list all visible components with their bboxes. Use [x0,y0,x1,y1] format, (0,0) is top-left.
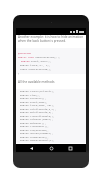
button[interactable]: Back [28,145,35,152]
staticText: Bugsee.setEmail(email); [20,117,53,120]
staticText: Bugsee.event(name); [20,100,48,103]
button[interactable]: Recent apps [67,145,74,152]
staticText: Bugsee.event("back"); [21,59,52,62]
staticText: Bugsee.upload(summary); [20,131,53,134]
staticText: } [18,71,20,74]
staticText: Bugsee.showDialog(); [20,135,49,138]
staticText: Bugsee.getAttribute(k); [20,110,53,113]
staticText: public void onBackPressed() { [18,55,60,58]
staticText: Bugsee.clearEmail(); [20,124,49,127]
staticText: Bugsee.addSecureRect(r); [20,138,55,141]
staticText: Bugsee.setAttribute(k,v); [20,107,56,110]
staticText: Bugsee.clearAttribute(); [20,114,55,117]
staticText: super.onBackPressed(); [20,67,52,70]
staticText: Bugsee.log(message); [20,128,49,131]
button[interactable]: Home [48,145,55,152]
staticText: Bugsee.relaunch(); [20,96,46,99]
staticText: Bugsee.launch(activity); [20,89,55,92]
staticText: Bugsee.getEmail(); [20,121,46,124]
staticText: Another example: it is how to hide anima… [18,35,84,39]
staticText: @Override [18,51,31,54]
staticText: Bugsee.trace("s", 1); [20,63,51,66]
staticText: All the available methods [18,80,55,84]
staticText: Bugsee.trace(name, val); [20,103,55,106]
staticText: when the back button is pressed. [18,39,66,43]
staticText: Bugsee.stop(); [20,93,41,96]
